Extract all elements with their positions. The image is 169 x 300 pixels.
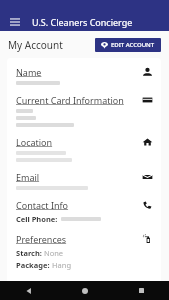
staticText: EDIT ACCOUNT xyxy=(111,41,155,49)
staticText: My Account xyxy=(8,38,63,52)
staticText: Name xyxy=(16,66,42,78)
button[interactable]: Preferences xyxy=(16,233,153,270)
staticText: Starch: xyxy=(16,248,42,258)
button[interactable]: EDIT ACCOUNT xyxy=(95,38,161,52)
button[interactable]: Email xyxy=(16,171,153,190)
staticText: Preferences xyxy=(16,233,67,245)
button[interactable]: Location xyxy=(16,136,153,162)
staticText: U.S. Cleaners Concierge xyxy=(32,16,133,28)
staticText: Cell Phone: xyxy=(16,214,58,224)
staticText: Email xyxy=(16,171,40,183)
button[interactable]: Home xyxy=(57,281,113,300)
staticText: Location xyxy=(16,136,53,148)
button[interactable]: Contact info xyxy=(16,199,153,224)
staticText: None xyxy=(44,248,64,258)
button[interactable]: Back xyxy=(0,281,57,300)
button[interactable]: Name xyxy=(16,66,153,85)
button[interactable]: Current card information xyxy=(16,94,153,127)
staticText: Package: xyxy=(16,260,50,270)
button[interactable]: Recent apps xyxy=(113,281,169,300)
staticText: Hang xyxy=(52,260,72,270)
staticText: Contact Info xyxy=(16,199,69,211)
staticText: Current Card Information xyxy=(16,94,124,106)
button[interactable]: Open navigation menu xyxy=(7,14,23,30)
